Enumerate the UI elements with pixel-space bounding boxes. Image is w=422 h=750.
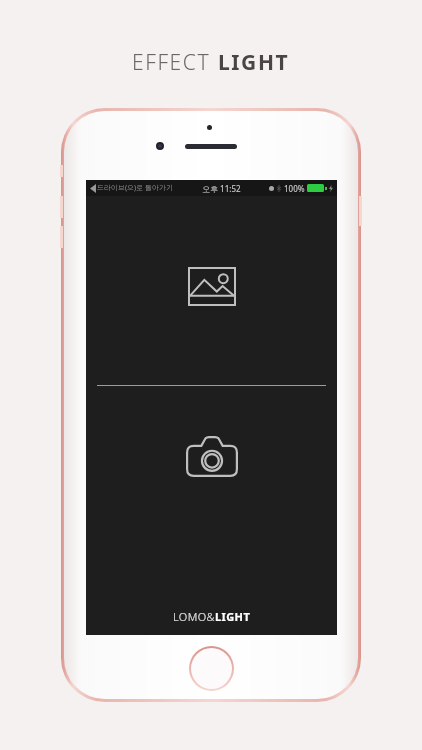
staticText: LIGHT (215, 609, 251, 624)
button[interactable]: Home (189, 646, 234, 691)
staticText: 드라이브(으)로 돌아가기 (97, 183, 174, 193)
staticText: LIGHT (218, 48, 290, 77)
staticText: LOMO& (173, 609, 215, 624)
staticText: EFFECT (132, 48, 218, 77)
staticText: 100% (284, 183, 305, 194)
staticText: 오후 11:52 (202, 183, 241, 194)
button[interactable]: Choose photo from gallery (86, 196, 337, 385)
button[interactable]: Take photo with camera (86, 386, 337, 609)
